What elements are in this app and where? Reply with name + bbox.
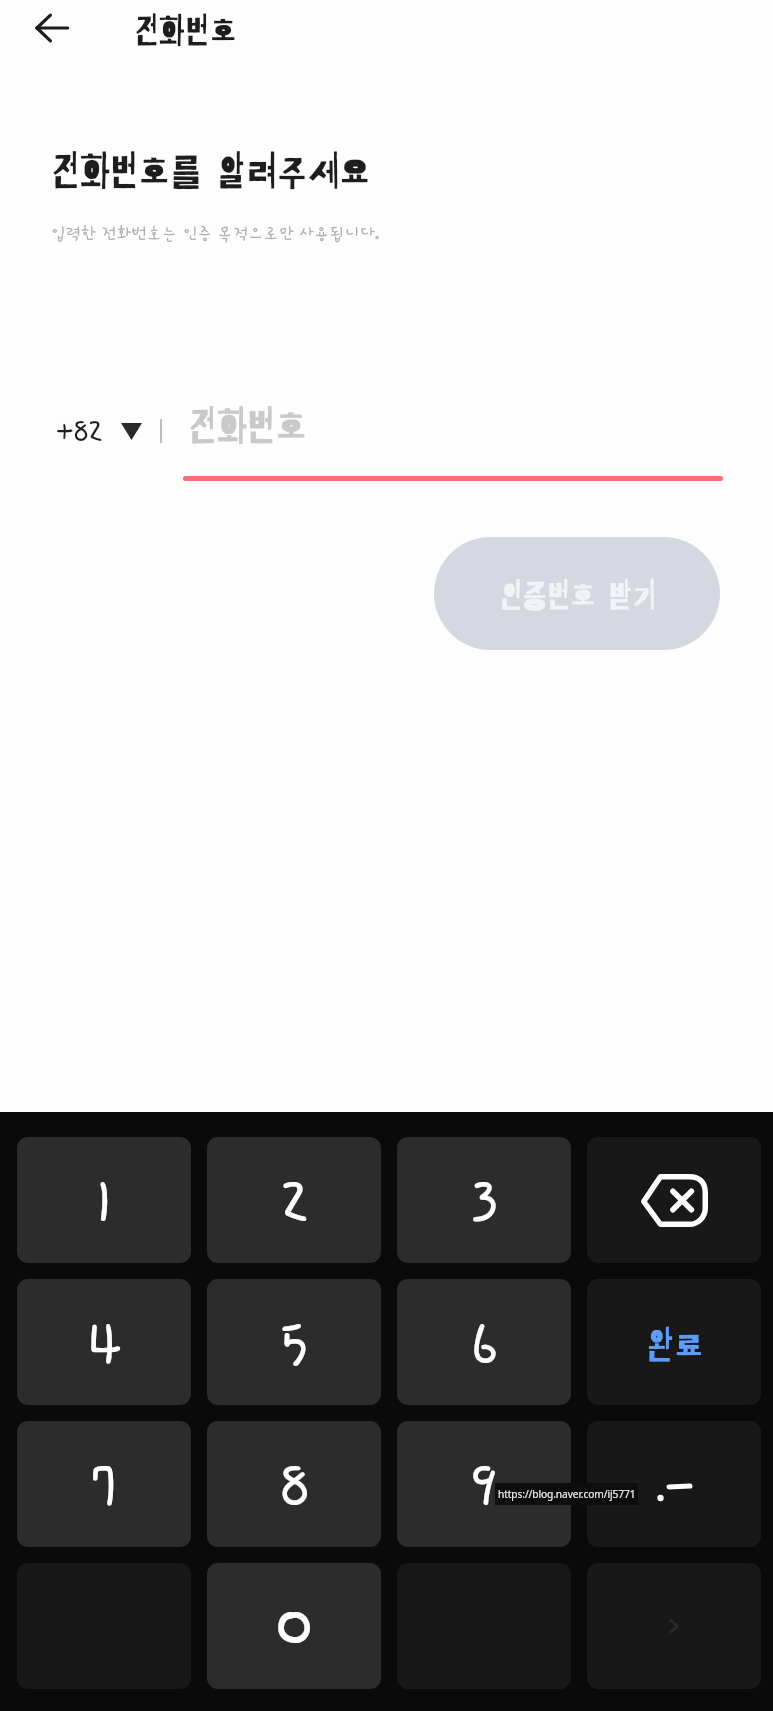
staticText: 6 (471, 1311, 498, 1389)
button[interactable]: 7 (17, 1421, 191, 1547)
staticText: 전화번호 (187, 405, 307, 449)
button[interactable]: 2 (207, 1137, 381, 1263)
button[interactable]: 3 (397, 1137, 571, 1263)
staticText: 9 (472, 1453, 496, 1531)
other: Dot and dash (644, 1464, 704, 1504)
other: Next (665, 1617, 683, 1635)
other: Backspace (640, 1174, 708, 1227)
staticText: 3 (470, 1169, 499, 1247)
staticText: 0 (275, 1590, 314, 1682)
staticText: 전화번호를 알려주세요 (50, 150, 371, 194)
button[interactable]: 6 (397, 1279, 571, 1405)
staticText: 4 (86, 1311, 123, 1389)
button[interactable]: 인증번호 받기 (434, 537, 720, 650)
button[interactable]: Back (29, 5, 75, 51)
button[interactable]: 9 (397, 1421, 571, 1547)
staticText: https://blog.naver.com/ij5771 (498, 1487, 636, 1501)
button[interactable]: 0 (207, 1563, 381, 1689)
button[interactable]: Backspace (587, 1137, 761, 1263)
staticText: +82 (56, 414, 103, 454)
button[interactable]: 8 (207, 1421, 381, 1547)
staticText: 2 (280, 1169, 309, 1247)
staticText: 인증번호 받기 (498, 578, 656, 614)
staticText: 5 (280, 1311, 308, 1389)
staticText: 입력한 전화번호는 인증 목적으로만 사용됩니다. (50, 224, 380, 243)
button[interactable]: 완료 (587, 1279, 761, 1405)
staticText: 8 (280, 1453, 309, 1531)
button[interactable]: 5 (207, 1279, 381, 1405)
staticText: 완료 (645, 1325, 704, 1366)
button[interactable]: 4 (17, 1279, 191, 1405)
staticText: 7 (91, 1453, 117, 1531)
button[interactable]: 1 (17, 1137, 191, 1263)
button[interactable]: +82 (56, 409, 307, 453)
button[interactable]: 전화번호 (133, 12, 237, 50)
other: Select country code (121, 423, 142, 440)
button[interactable]: Dot and dash (587, 1421, 761, 1547)
staticText: 1 (96, 1169, 113, 1247)
